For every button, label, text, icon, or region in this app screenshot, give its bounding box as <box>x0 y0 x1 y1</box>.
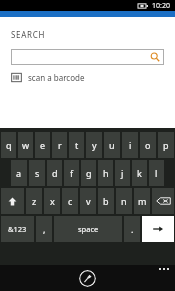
button[interactable]: c <box>62 188 78 214</box>
other: Battery <box>138 3 148 9</box>
button[interactable]: g <box>81 160 96 186</box>
staticText: . <box>131 223 134 235</box>
button[interactable]: y <box>86 132 102 158</box>
staticText: q <box>6 139 12 151</box>
staticText: k <box>137 167 142 179</box>
button[interactable]: s <box>29 160 45 186</box>
button[interactable]: v <box>80 188 96 214</box>
staticText: a <box>16 167 22 179</box>
button[interactable]: a <box>11 160 27 186</box>
staticText: n <box>121 195 127 207</box>
other: Search <box>150 52 160 62</box>
button[interactable]: f <box>64 160 79 186</box>
staticText: i <box>129 139 132 151</box>
button[interactable]: h <box>98 160 113 186</box>
staticText: j <box>121 167 124 179</box>
staticText: p <box>163 139 169 151</box>
button[interactable]: p <box>158 132 174 158</box>
staticText: l <box>155 167 158 179</box>
staticText: e <box>40 139 46 151</box>
button[interactable]: d <box>47 160 62 186</box>
button[interactable]: n <box>116 188 132 214</box>
button[interactable]: e <box>35 132 50 158</box>
button[interactable]: w <box>18 132 33 158</box>
button[interactable]: m <box>134 188 150 214</box>
button[interactable]: k <box>132 160 147 186</box>
staticText: g <box>86 167 92 179</box>
button[interactable]: Search <box>11 49 164 65</box>
staticText: c <box>68 195 73 207</box>
button[interactable]: Backspace <box>152 188 174 214</box>
staticText: y <box>92 139 97 151</box>
button[interactable]: o <box>140 132 156 158</box>
staticText: &123 <box>8 224 27 234</box>
other: Scan a barcode <box>11 72 22 83</box>
staticText: scan a barcode <box>28 72 85 83</box>
button[interactable]: Enter <box>142 216 174 242</box>
staticText: t <box>75 139 79 151</box>
button[interactable]: . <box>124 216 140 242</box>
button[interactable]: Scan a barcode <box>11 72 85 83</box>
staticText: z <box>32 195 37 207</box>
button[interactable]: b <box>98 188 114 214</box>
staticText: w <box>22 139 30 151</box>
button[interactable]: , <box>36 216 52 242</box>
button[interactable]: Shift <box>1 188 24 214</box>
staticText: d <box>52 167 58 179</box>
button[interactable]: z <box>26 188 42 214</box>
staticText: r <box>58 139 62 151</box>
staticText: u <box>109 139 115 151</box>
staticText: m <box>138 195 147 207</box>
button[interactable]: More options <box>159 268 169 270</box>
button[interactable]: l <box>149 160 164 186</box>
staticText: o <box>145 139 151 151</box>
staticText: b <box>103 195 109 207</box>
staticText: h <box>103 167 109 179</box>
staticText: , <box>43 223 46 235</box>
button[interactable]: Pin to start <box>79 270 96 287</box>
button[interactable]: u <box>104 132 120 158</box>
staticText: s <box>35 167 40 179</box>
staticText: space <box>78 224 99 234</box>
button[interactable]: r <box>52 132 67 158</box>
button[interactable]: x <box>44 188 60 214</box>
staticText: SEARCH <box>11 29 46 40</box>
button[interactable]: q <box>1 132 16 158</box>
button[interactable]: j <box>115 160 130 186</box>
staticText: 10:20 <box>152 1 170 11</box>
staticText: x <box>50 195 55 207</box>
button[interactable]: space <box>54 216 122 242</box>
button[interactable]: &123 <box>1 216 34 242</box>
button[interactable]: t <box>69 132 84 158</box>
button[interactable]: i <box>122 132 138 158</box>
staticText: v <box>86 195 91 207</box>
staticText: f <box>70 167 74 179</box>
